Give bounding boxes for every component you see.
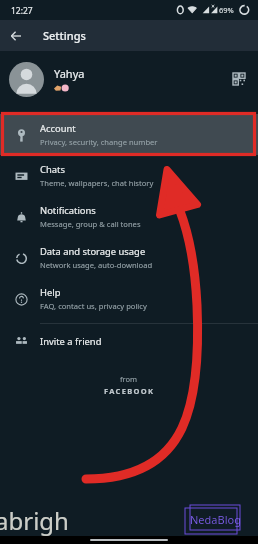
button[interactable]: Back xyxy=(0,20,32,51)
staticText: abrigh xyxy=(0,504,69,537)
staticText: Help xyxy=(40,286,61,299)
staticText: FACEBOOK xyxy=(104,386,155,396)
staticText: Yahya xyxy=(54,66,85,81)
button[interactable]: QR code xyxy=(226,64,252,94)
staticText: Chats xyxy=(40,163,65,176)
button[interactable]: Chats xyxy=(0,155,258,196)
staticText: Message, group & call tones xyxy=(40,219,141,229)
staticText: 69% xyxy=(219,5,234,15)
button[interactable]: Account xyxy=(0,114,258,155)
button[interactable]: Help xyxy=(0,278,258,319)
staticText: Invite a friend xyxy=(40,335,102,348)
staticText: Data and storage usage xyxy=(40,245,146,258)
staticText: 12:27 xyxy=(11,5,33,17)
button[interactable]: Yahya xyxy=(0,51,258,114)
staticText: from xyxy=(120,374,138,384)
staticText: NedaBlog xyxy=(190,512,241,527)
staticText: Account xyxy=(40,122,76,135)
staticText: FAQ, contact us, privacy policy xyxy=(40,301,147,311)
button[interactable]: Notifications xyxy=(0,196,258,237)
button[interactable]: Invite a friend xyxy=(0,324,258,358)
button[interactable]: Data and storage usage xyxy=(0,237,258,278)
staticText: Notifications xyxy=(40,204,96,217)
staticText: Settings xyxy=(43,28,86,43)
staticText: Privacy, security, change number xyxy=(40,137,158,147)
staticText: Network usage, auto-download xyxy=(40,260,153,270)
staticText: Theme, wallpapers, chat history xyxy=(40,178,154,188)
